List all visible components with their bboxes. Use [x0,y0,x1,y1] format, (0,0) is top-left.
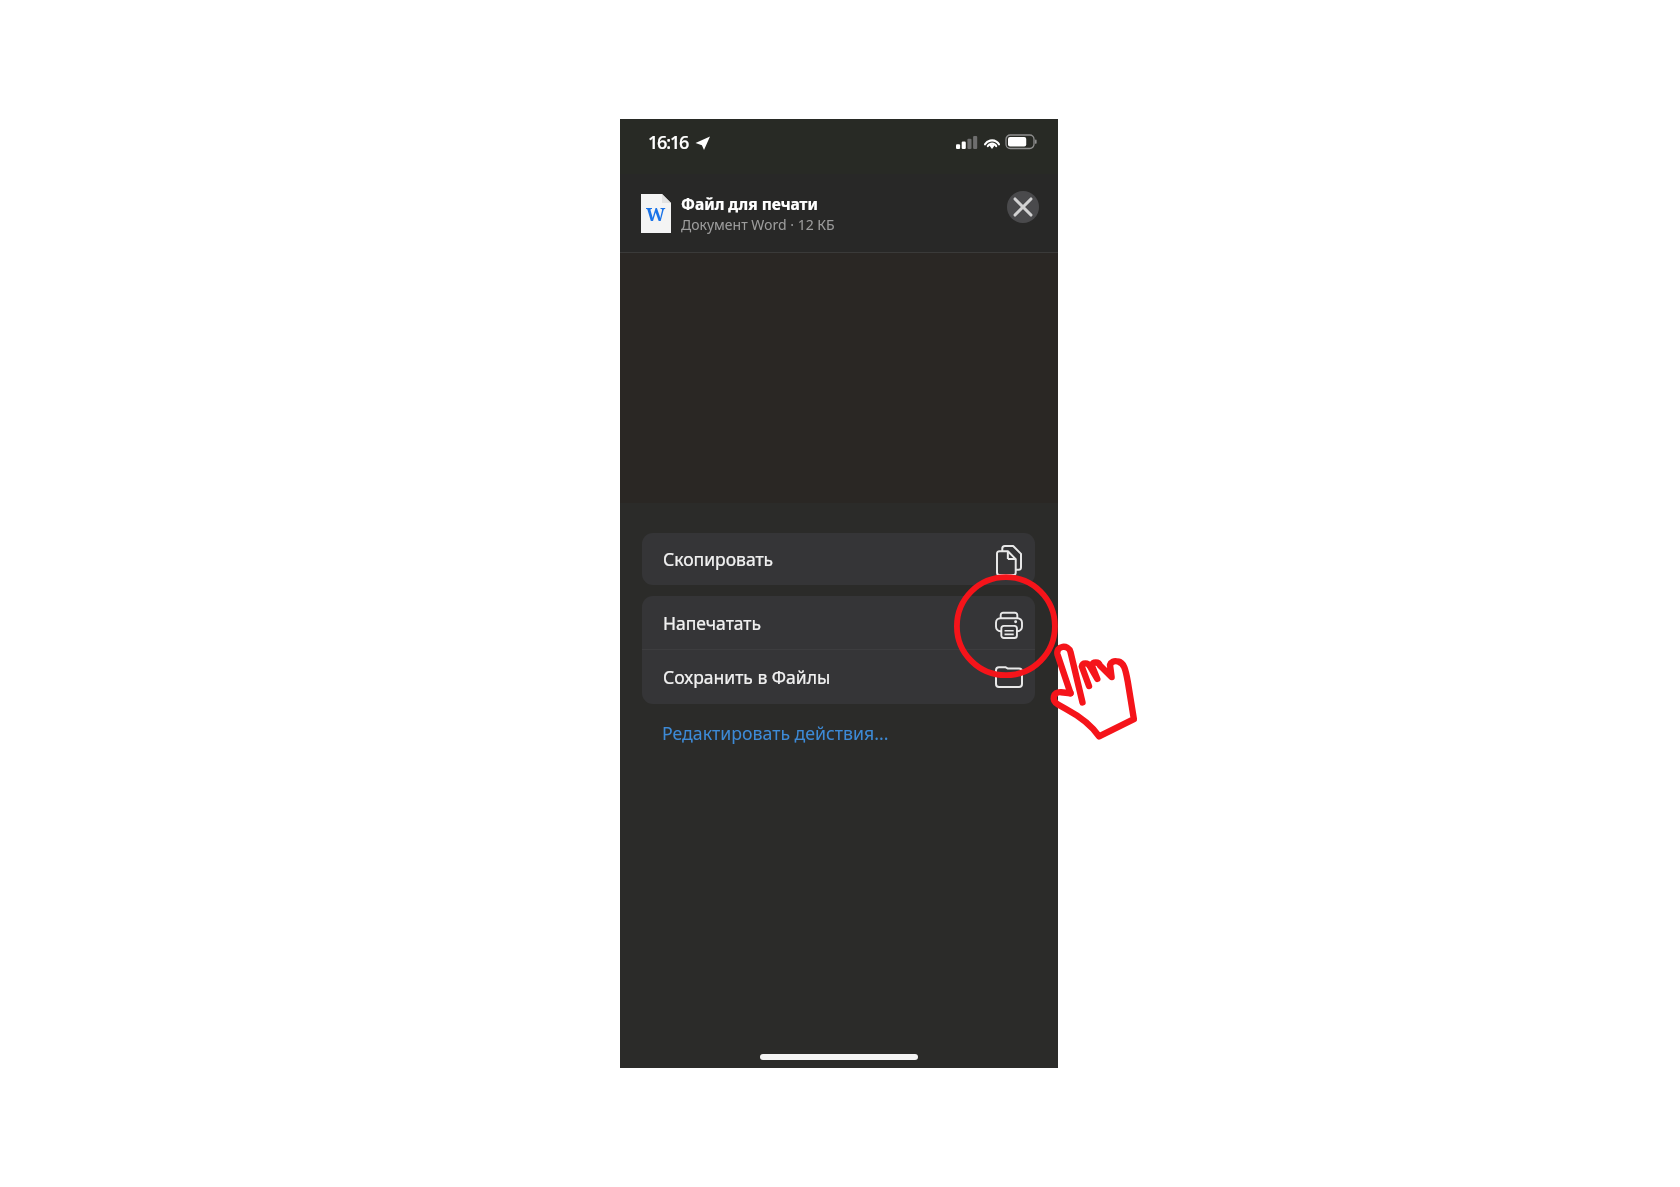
staticText: Сохранить в Файлы [663,665,831,689]
button[interactable]: W [620,174,1058,252]
button[interactable]: Close [1007,191,1039,223]
staticText: W [646,202,666,227]
button[interactable]: Сохранить в Файлы [642,650,1035,704]
button[interactable]: Редактировать действия... [654,713,897,753]
staticText: Документ Word · 12 КБ [681,215,835,234]
staticText: Редактировать действия... [662,721,889,745]
staticText: Напечатать [663,611,762,635]
staticText: Скопировать [663,547,774,571]
staticText: 16:16 [648,130,689,155]
button[interactable]: Скопировать [642,533,1035,585]
staticText: Файл для печати [681,193,818,214]
button[interactable]: Напечатать [642,596,1035,649]
